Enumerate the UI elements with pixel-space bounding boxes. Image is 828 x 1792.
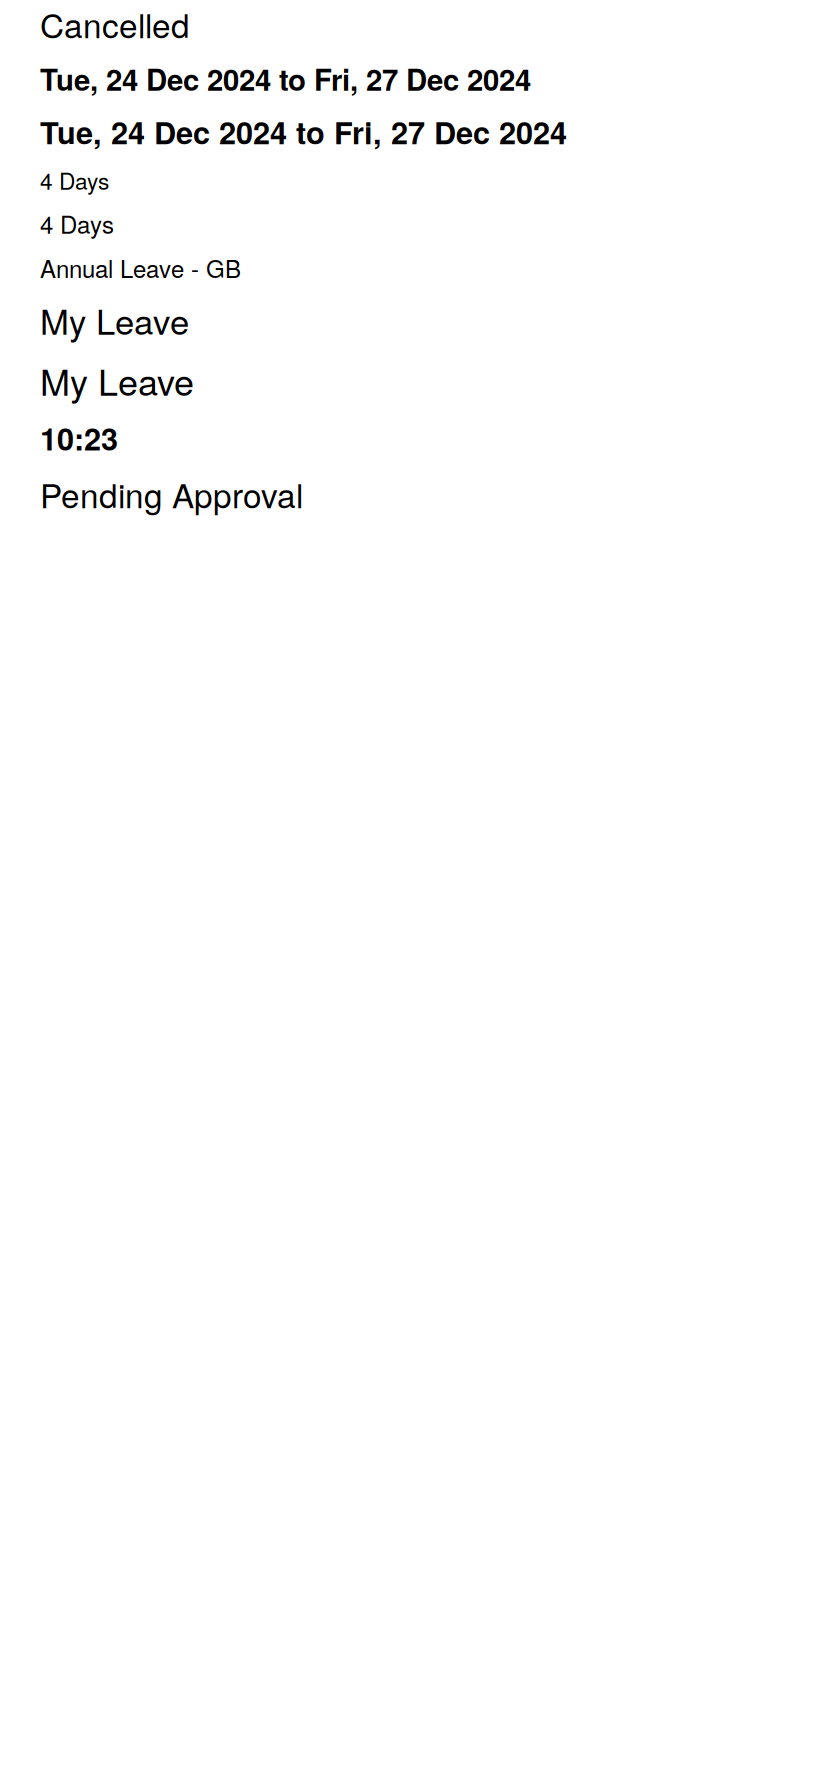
staticText: Annual Leave - GB [40,250,241,285]
staticText: My Leave [40,295,189,344]
staticText: Pending Approval [40,470,303,518]
staticText: Tue, 24 Dec 2024 to Fri, 27 Dec 2024 [40,58,531,100]
staticText: Cancelled [40,0,190,48]
staticText: 10:23 [40,416,118,460]
staticText: Tue, 24 Dec 2024 to Fri, 27 Dec 2024 [40,110,567,154]
staticText: My Leave [40,354,194,406]
staticText: 4 Days [40,164,109,196]
staticText: 4 Days [40,206,114,240]
